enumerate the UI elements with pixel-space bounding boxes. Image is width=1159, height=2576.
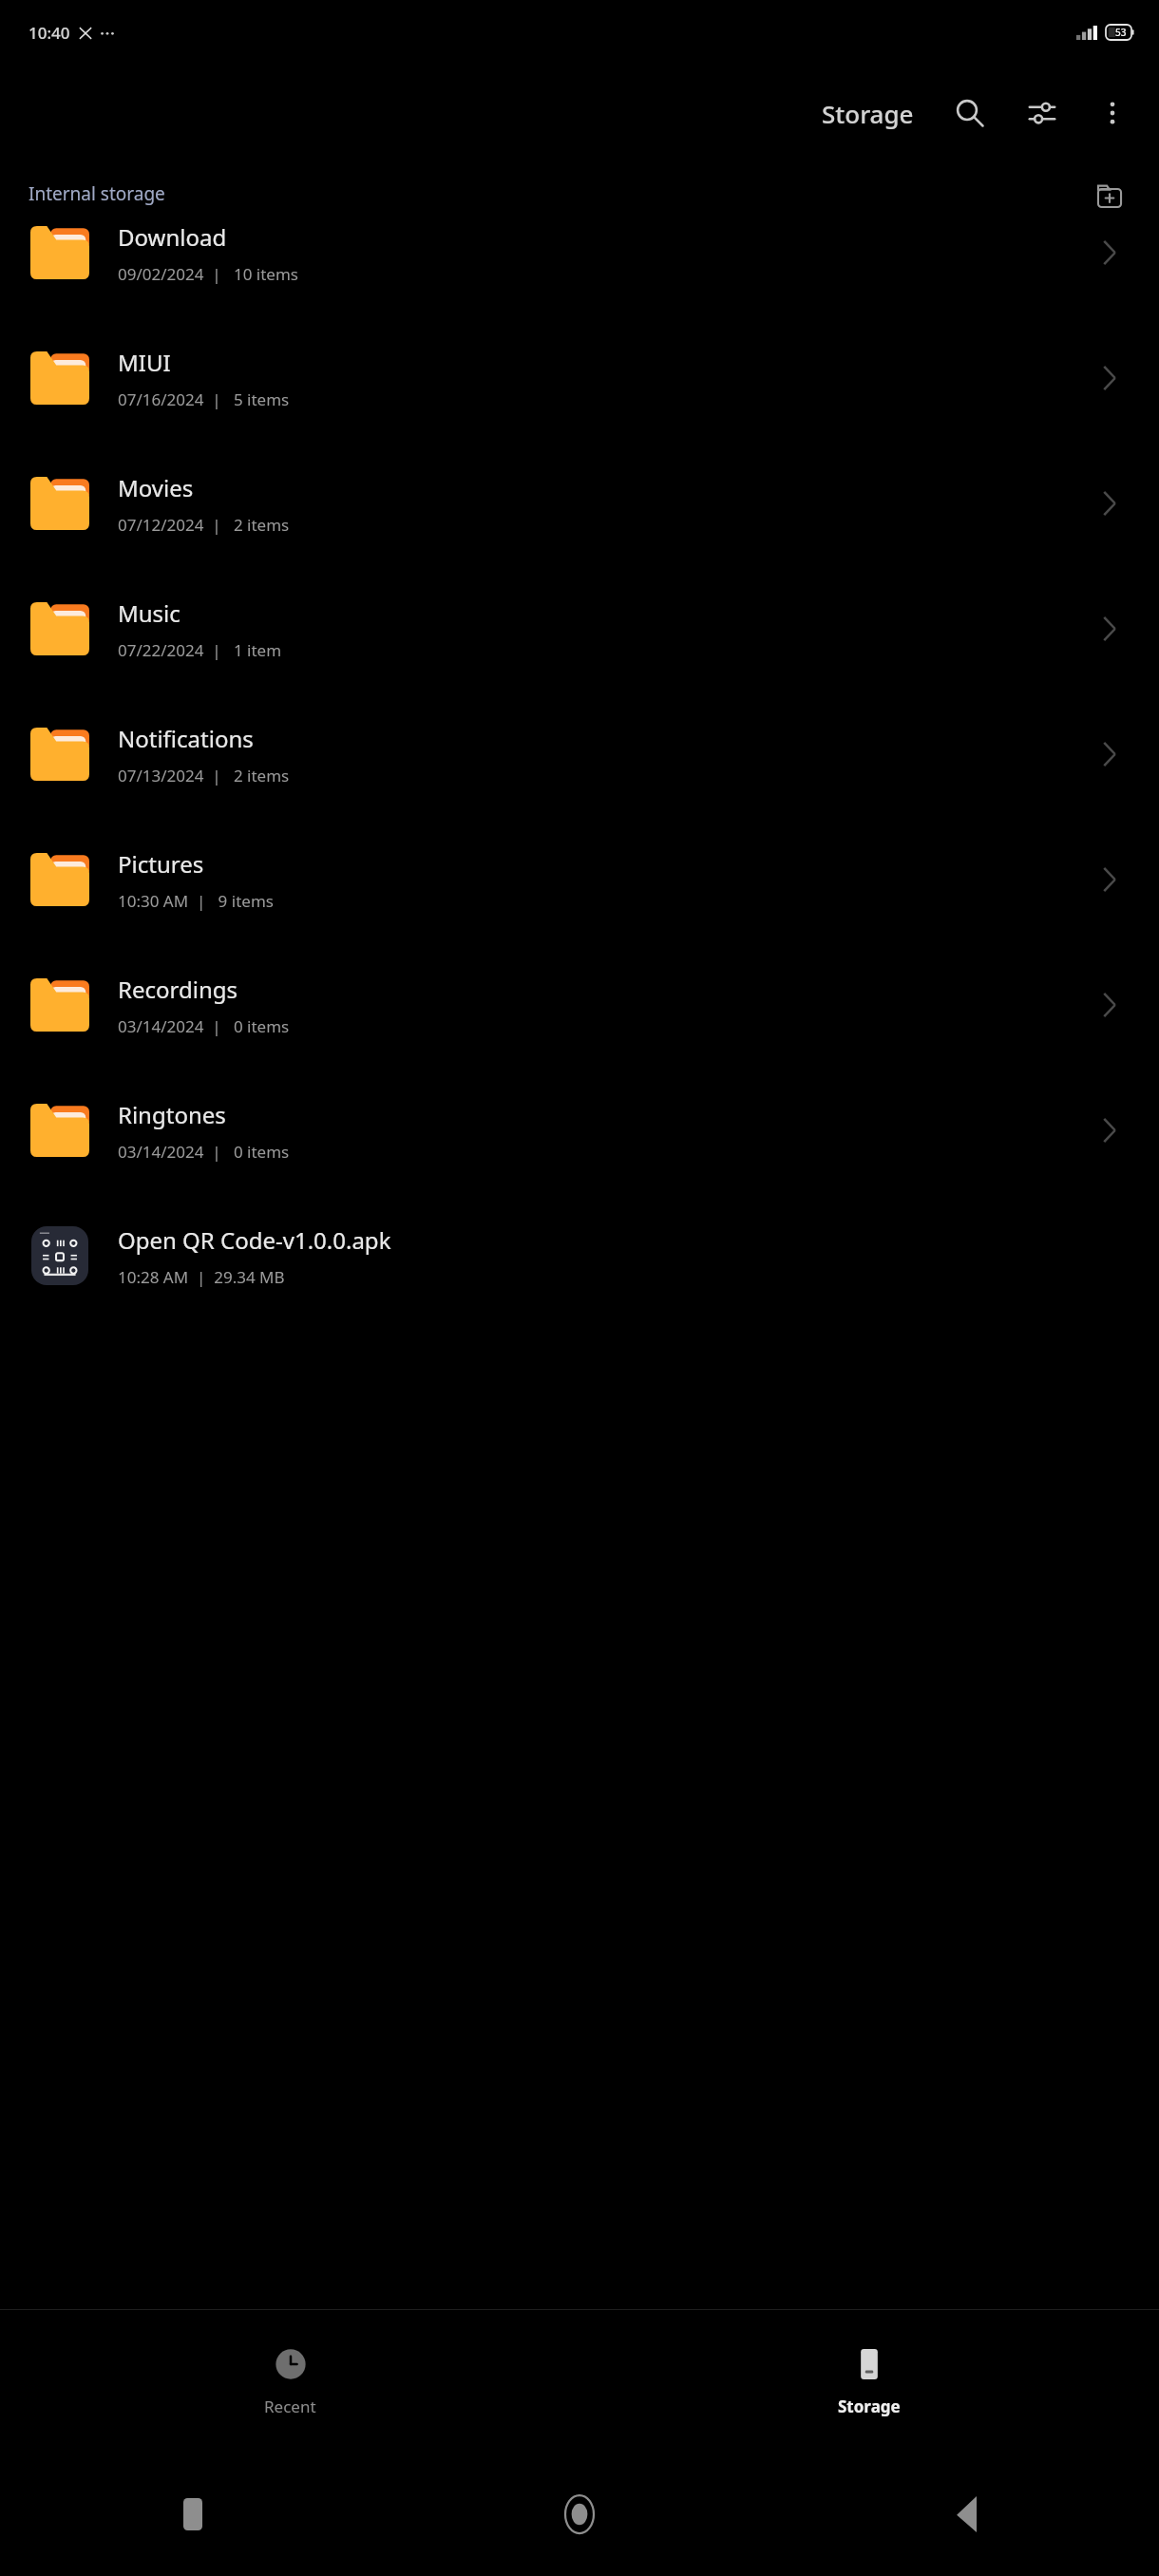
button[interactable]: Recent: [0, 2310, 579, 2453]
staticText: Recent: [264, 2396, 316, 2417]
button[interactable]: Music: [0, 566, 1159, 691]
staticText: 07/12/2024 | 2 items: [118, 514, 290, 536]
staticText: Download: [118, 221, 227, 253]
staticText: 03/14/2024 | 0 items: [118, 1015, 290, 1037]
staticText: 07/13/2024 | 2 items: [118, 765, 290, 786]
button[interactable]: Search: [940, 84, 999, 142]
button[interactable]: New folder: [1085, 169, 1134, 218]
button[interactable]: More options: [1083, 84, 1142, 142]
staticText: 07/22/2024 | 1 item: [118, 639, 282, 661]
button[interactable]: MIUI: [0, 315, 1159, 441]
button[interactable]: Home: [386, 2453, 772, 2576]
staticText: 53: [1115, 26, 1127, 39]
staticText: 10:40: [28, 22, 70, 44]
button[interactable]: Download: [0, 190, 1159, 315]
button[interactable]: Storage: [579, 2310, 1159, 2453]
staticText: 09/02/2024 | 10 items: [118, 263, 298, 285]
staticText: Movies: [118, 472, 194, 503]
staticText: 10:30 AM | 9 items: [118, 890, 274, 912]
button[interactable]: Notifications: [0, 691, 1159, 817]
button[interactable]: Open QR Code-v1.0.0.apk: [0, 1193, 1159, 1318]
staticText: Internal storage: [28, 181, 165, 206]
button[interactable]: Storage: [822, 97, 914, 130]
button[interactable]: Recents: [0, 2453, 386, 2576]
staticText: 10:28 AM | 29.34 MB: [118, 1266, 285, 1288]
staticText: 07/16/2024 | 5 items: [118, 388, 290, 410]
staticText: MIUI: [118, 347, 171, 378]
staticText: Ringtones: [118, 1099, 226, 1130]
staticText: Music: [118, 597, 180, 629]
button[interactable]: Sort and filter: [1013, 84, 1072, 142]
button[interactable]: Recordings: [0, 942, 1159, 1068]
button[interactable]: Movies: [0, 441, 1159, 566]
button[interactable]: Back: [772, 2453, 1159, 2576]
staticText: 03/14/2024 | 0 items: [118, 1141, 290, 1163]
staticText: Pictures: [118, 848, 204, 880]
button[interactable]: Pictures: [0, 817, 1159, 942]
button[interactable]: Ringtones: [0, 1068, 1159, 1193]
staticText: Notifications: [118, 723, 254, 754]
staticText: Recordings: [118, 974, 237, 1005]
staticText: Open QR Code-v1.0.0.apk: [118, 1224, 391, 1256]
staticText: Storage: [838, 2396, 901, 2417]
